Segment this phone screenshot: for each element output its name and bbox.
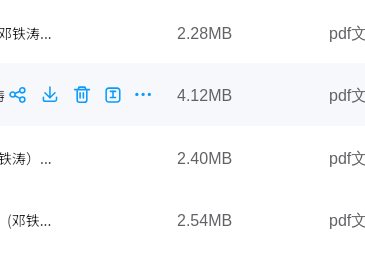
button[interactable]: Share [7, 84, 29, 106]
staticText: 铁涛）... [0, 148, 52, 168]
button[interactable]: Download [39, 84, 61, 106]
staticText: pdf文件 [329, 86, 365, 106]
button[interactable]: Delete [71, 84, 93, 106]
button[interactable]: (邓铁... [0, 188, 365, 251]
button[interactable]: 铁涛）... [0, 126, 365, 189]
staticText: 2.28MB [177, 25, 233, 43]
staticText: 4.12MB [177, 87, 233, 105]
staticText: pdf文件 [329, 211, 365, 231]
staticText: pdf文件 [329, 149, 365, 169]
staticText: 2.40MB [177, 150, 233, 168]
staticText: pdf文件 [329, 24, 365, 44]
staticText: 2.54MB [177, 212, 233, 230]
staticText: (邓铁... [7, 210, 52, 230]
button[interactable]: 邓铁涛... [0, 1, 365, 64]
staticText: 邓铁涛... [0, 23, 52, 43]
button[interactable]: Rename [102, 84, 124, 106]
staticText: 国医大师邓铁涛 [0, 85, 5, 105]
button[interactable]: More options [132, 84, 154, 106]
